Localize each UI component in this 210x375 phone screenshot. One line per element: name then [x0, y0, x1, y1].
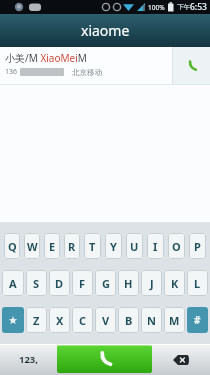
staticText: N — [147, 313, 156, 328]
button[interactable]: Y — [105, 233, 122, 259]
staticText: K — [171, 276, 179, 291]
button[interactable]: X — [49, 307, 70, 333]
staticText: E — [49, 239, 56, 254]
button[interactable]: Q — [4, 233, 20, 259]
staticText: J — [150, 276, 154, 291]
staticText: F — [79, 276, 86, 291]
button[interactable] — [152, 344, 210, 375]
button[interactable]: T — [84, 233, 101, 259]
staticText: V — [102, 313, 110, 328]
button[interactable]: V — [95, 307, 116, 333]
button[interactable]: # — [187, 307, 208, 333]
button[interactable]: B — [118, 307, 139, 333]
staticText: C — [79, 313, 87, 328]
staticText: 下午 — [177, 3, 190, 11]
button[interactable]: U — [126, 233, 143, 259]
button[interactable]: K — [164, 270, 185, 296]
staticText: 6:53 — [190, 1, 207, 13]
staticText: 123, — [19, 353, 39, 366]
button[interactable] — [57, 345, 152, 373]
button[interactable]: A — [2, 270, 24, 296]
staticText: M — [169, 313, 180, 328]
button[interactable]: W — [24, 233, 40, 259]
button[interactable] — [173, 47, 210, 84]
button[interactable]: M — [164, 307, 185, 333]
staticText: T — [89, 239, 96, 254]
staticText: R — [68, 239, 76, 254]
staticText: P — [194, 239, 201, 254]
button[interactable]: R — [64, 233, 80, 259]
staticText: L — [194, 276, 201, 291]
button[interactable]: 小美/M XiaoMeiM — [0, 47, 210, 84]
button[interactable]: F — [72, 270, 93, 296]
staticText: # — [194, 313, 201, 327]
staticText: W — [27, 239, 38, 254]
staticText: I — [153, 239, 158, 254]
staticText: 北京移动 — [72, 68, 102, 77]
staticText: xiaome — [81, 21, 130, 40]
button[interactable] — [2, 307, 24, 333]
button[interactable]: E — [44, 233, 60, 259]
button[interactable]: C — [72, 307, 93, 333]
button[interactable]: Z — [26, 307, 47, 333]
staticText: X — [56, 313, 64, 328]
staticText: D — [55, 276, 64, 291]
staticText: 小美/M XiaoMeiM — [5, 51, 87, 65]
button[interactable]: H — [118, 270, 139, 296]
button[interactable]: O — [168, 233, 185, 259]
staticText: 100% — [148, 3, 165, 12]
staticText: Q — [8, 239, 17, 254]
button[interactable]: D — [49, 270, 70, 296]
button[interactable]: L — [187, 270, 208, 296]
button[interactable]: 123, — [0, 344, 57, 375]
staticText: 136 — [5, 67, 18, 77]
staticText: S — [33, 276, 40, 291]
staticText: Y — [110, 239, 117, 254]
staticText: U — [130, 239, 139, 254]
staticText: H — [124, 276, 133, 291]
button[interactable]: I — [147, 233, 164, 259]
button[interactable]: N — [141, 307, 162, 333]
staticText: B — [125, 313, 133, 328]
staticText: G — [102, 276, 110, 291]
staticText: O — [172, 239, 181, 254]
button[interactable]: G — [95, 270, 116, 296]
staticText: Z — [33, 313, 40, 328]
button[interactable]: P — [189, 233, 206, 259]
button[interactable]: S — [26, 270, 47, 296]
staticText: A — [9, 276, 17, 291]
button[interactable]: J — [141, 270, 162, 296]
